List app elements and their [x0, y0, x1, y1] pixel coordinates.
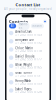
staticText: Daniel Brooks	[15, 55, 34, 58]
staticText: All your people, neatly organised	[4, 7, 52, 11]
button[interactable]: Isabel Reyes	[6, 86, 49, 95]
staticText: +1 202 555 0131	[15, 74, 42, 77]
staticText: +1 202 555 0177	[15, 57, 42, 61]
button[interactable]: Favorites	[17, 22, 30, 30]
staticText: Recent	[32, 24, 42, 28]
staticText: +1 202 555 0118	[15, 49, 42, 53]
staticText: Chloe Martin	[15, 46, 33, 50]
staticText: All	[11, 24, 15, 28]
staticText: Ethan Wright	[15, 63, 32, 66]
staticText: Grace Turner	[15, 71, 32, 74]
button[interactable]: Add contact	[43, 19, 47, 23]
button[interactable]: Henry Walsh	[6, 78, 49, 86]
button[interactable]: Benjamin Lee	[6, 37, 49, 45]
staticText: Amelia Clark	[15, 30, 31, 33]
staticText: +1 202 555 0143	[15, 33, 42, 36]
staticText: +1 202 555 0159	[15, 82, 42, 85]
staticText: Contacts	[9, 19, 28, 24]
staticText: +1 202 555 0165	[15, 66, 42, 69]
button[interactable]: Daniel Brooks	[6, 54, 49, 62]
button[interactable]: Amelia Clark	[6, 29, 49, 37]
button[interactable]: Grace Turner	[6, 70, 49, 78]
staticText: +1 202 555 0126	[15, 90, 42, 94]
button[interactable]: All	[9, 23, 16, 28]
staticText: +1 202 555 0192	[15, 41, 42, 44]
staticText: Benjamin Lee	[15, 38, 34, 42]
button[interactable]: Ethan Wright	[6, 62, 49, 70]
staticText: Contact List	[15, 2, 40, 7]
staticText: Henry Walsh	[15, 79, 31, 83]
staticText: Favorites	[19, 22, 28, 30]
staticText: Isabel Reyes	[15, 87, 31, 91]
button[interactable]: Chloe Martin	[6, 45, 49, 54]
button[interactable]: Recent	[31, 23, 44, 28]
